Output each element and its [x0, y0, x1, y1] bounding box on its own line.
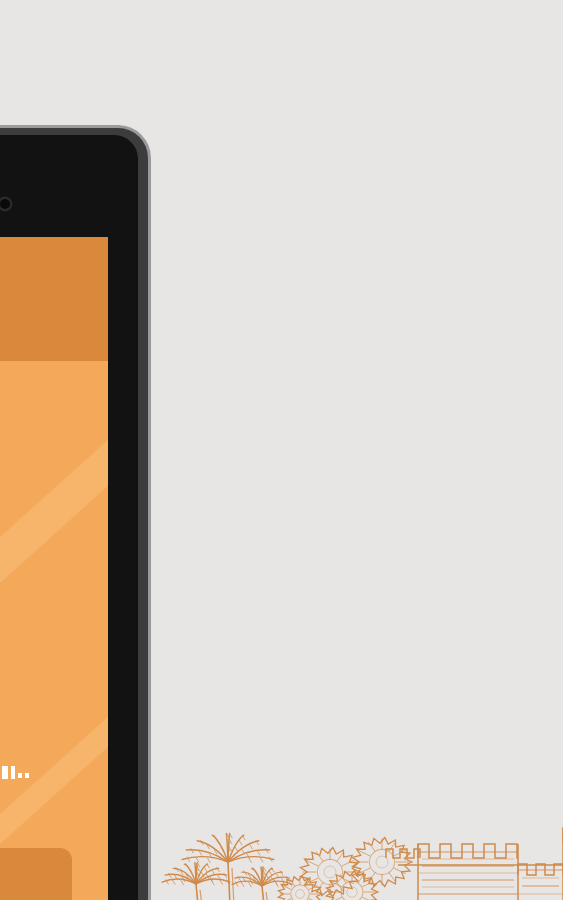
button[interactable]: App preview on phone — [0, 0, 563, 900]
